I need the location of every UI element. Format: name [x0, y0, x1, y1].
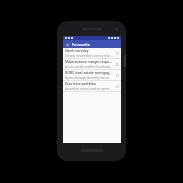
- staticText: Hard currency: [65, 48, 89, 53]
- staticText: ROBC (real estate mortgage investment co…: [65, 70, 113, 75]
- staticText: Maintenance margin requirement: [65, 59, 113, 64]
- button[interactable]: Bookmark: [115, 62, 119, 66]
- staticText: Favourite: [72, 42, 91, 47]
- button[interactable]: Bookmark: [115, 73, 119, 77]
- button[interactable]: Maintenance margin requirement: [63, 59, 121, 70]
- button[interactable]: Bookmark: [115, 51, 119, 55]
- staticText: A sum usually smaller than that paid at …: [65, 65, 113, 69]
- staticText: A freely convertible currency that is no…: [65, 54, 113, 58]
- button[interactable]: Hard currency: [63, 48, 121, 59]
- button[interactable]: Back: [64, 41, 71, 48]
- staticText: A pass-through tax entity that can hold …: [65, 76, 113, 80]
- button[interactable]: ROBC (real estate mortgage investment co…: [63, 70, 121, 81]
- staticText: Zero beta portfolio: [65, 81, 97, 86]
- staticText: A portfolio constructed to represent the…: [65, 87, 113, 91]
- button[interactable]: Zero beta portfolio: [63, 81, 121, 92]
- button[interactable]: Bookmark: [115, 84, 119, 88]
